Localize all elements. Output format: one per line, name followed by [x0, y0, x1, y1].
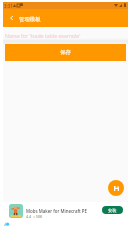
staticText: 保存	[60, 49, 71, 56]
staticText: 3:31	[4, 3, 13, 9]
button[interactable]: 安装	[102, 206, 123, 214]
staticText: Name for 'trade table example'	[5, 32, 81, 39]
staticText: Mobs Maker for Minecraft PE	[26, 208, 87, 214]
staticText: 管理模板	[19, 16, 41, 23]
button[interactable]: Save	[108, 180, 124, 196]
button[interactable]: Back	[4, 9, 18, 27]
staticText: 4.4	[26, 214, 32, 219]
staticText: 安装	[108, 208, 117, 213]
staticText: 50K	[36, 214, 43, 219]
button[interactable]: 保存	[5, 44, 126, 61]
